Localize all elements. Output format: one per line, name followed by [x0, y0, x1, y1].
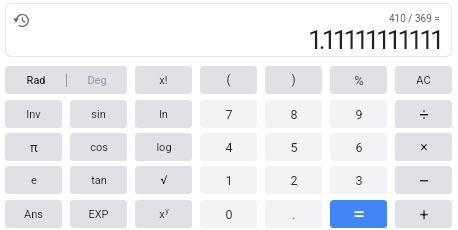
staticText: %: [354, 73, 364, 88]
staticText: sin: [91, 108, 106, 121]
button[interactable]: Inv: [5, 100, 62, 128]
button[interactable]: 7: [200, 100, 257, 128]
button[interactable]: (: [200, 66, 257, 94]
button[interactable]: Rad: [5, 66, 66, 94]
staticText: 0: [225, 207, 233, 222]
staticText: .: [292, 207, 296, 222]
button[interactable]: 3: [330, 166, 387, 194]
button[interactable]: cos: [70, 133, 127, 161]
staticText: (: [226, 73, 231, 87]
button[interactable]: ×: [395, 133, 452, 161]
staticText: 1.11111111111: [308, 25, 441, 55]
button[interactable]: 6: [330, 133, 387, 161]
staticText: 4: [225, 140, 233, 155]
button[interactable]: ): [265, 66, 322, 94]
button[interactable]: .: [265, 200, 322, 228]
button[interactable]: tan: [70, 166, 127, 194]
button[interactable]: 9: [330, 100, 387, 128]
button[interactable]: ÷: [395, 100, 452, 128]
button[interactable]: AC: [395, 66, 452, 94]
staticText: ): [291, 73, 296, 87]
staticText: tan: [91, 174, 107, 187]
staticText: Ans: [24, 208, 43, 221]
staticText: 6: [355, 140, 363, 155]
staticText: AC: [416, 74, 431, 87]
button[interactable]: π: [5, 133, 62, 161]
button[interactable]: 4: [200, 133, 257, 161]
staticText: x!: [159, 74, 168, 87]
button[interactable]: +: [395, 200, 452, 228]
staticText: Inv: [26, 108, 41, 121]
staticText: =: [353, 202, 365, 227]
staticText: ×: [420, 139, 428, 155]
staticText: x: [159, 208, 165, 221]
staticText: 2: [290, 173, 298, 188]
staticText: ln: [159, 108, 168, 121]
staticText: +: [419, 205, 429, 224]
staticText: 410 / 369 =: [389, 13, 440, 25]
staticText: Rad: [26, 74, 46, 87]
button[interactable]: x!: [135, 66, 192, 94]
button[interactable]: %: [330, 66, 387, 94]
button[interactable]: 8: [265, 100, 322, 128]
button[interactable]: e: [5, 166, 62, 194]
staticText: y: [165, 206, 169, 215]
staticText: Deg: [87, 74, 107, 87]
staticText: EXP: [88, 208, 109, 221]
staticText: 1: [225, 173, 233, 188]
staticText: ÷: [419, 104, 429, 124]
button[interactable]: History: [8, 7, 34, 33]
button[interactable]: =: [330, 200, 387, 228]
staticText: 7: [225, 107, 233, 122]
button[interactable]: sin: [70, 100, 127, 128]
staticText: −: [418, 169, 430, 192]
staticText: 3: [355, 173, 363, 188]
staticText: π: [30, 140, 38, 155]
staticText: 5: [290, 140, 298, 155]
staticText: e: [31, 174, 37, 187]
button[interactable]: EXP: [70, 200, 127, 228]
button[interactable]: ln: [135, 100, 192, 128]
button[interactable]: log: [135, 133, 192, 161]
button[interactable]: 1: [200, 166, 257, 194]
staticText: log: [156, 141, 172, 154]
staticText: 9: [355, 107, 363, 122]
staticText: √: [160, 173, 168, 187]
button[interactable]: √: [135, 166, 192, 194]
button[interactable]: x: [135, 200, 192, 228]
button[interactable]: Deg: [66, 66, 127, 94]
staticText: 8: [290, 107, 298, 122]
button[interactable]: 2: [265, 166, 322, 194]
button[interactable]: −: [395, 166, 452, 194]
button[interactable]: Ans: [5, 200, 62, 228]
staticText: cos: [90, 141, 108, 154]
button[interactable]: 5: [265, 133, 322, 161]
button[interactable]: 0: [200, 200, 257, 228]
